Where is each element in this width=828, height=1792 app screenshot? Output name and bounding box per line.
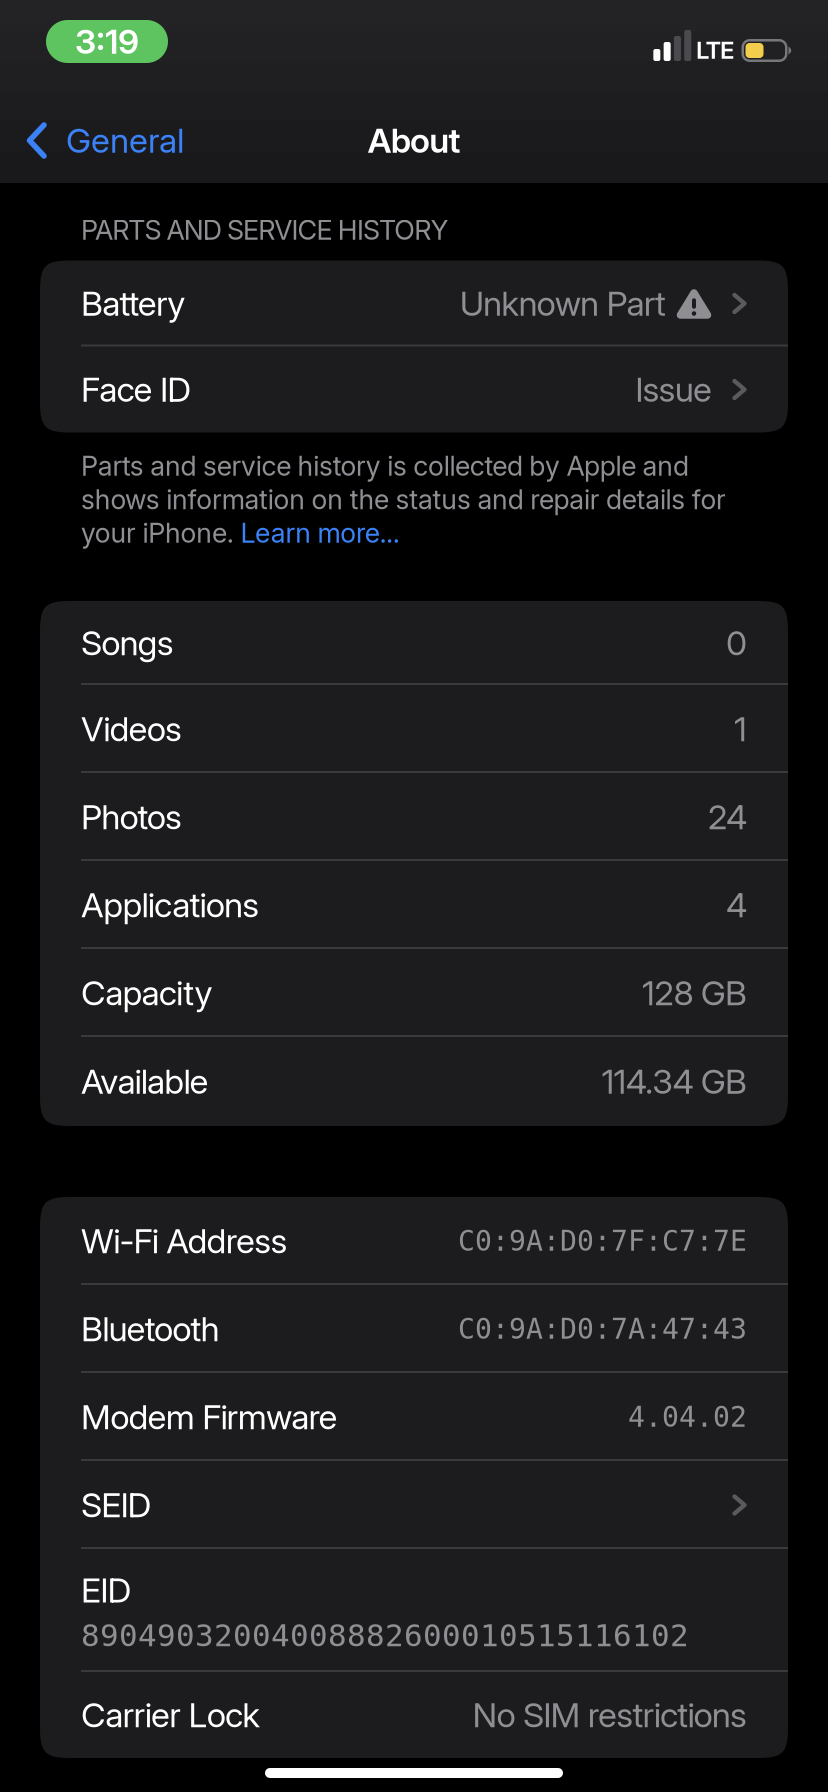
staticText: your iPhone.: [81, 517, 240, 549]
staticText: 4: [726, 884, 747, 925]
staticText: 3:19: [75, 21, 139, 62]
staticText: 128 GB: [642, 972, 747, 1013]
staticText: 114.34 GB: [601, 1061, 747, 1102]
staticText: Learn more...: [240, 517, 400, 549]
staticText: shows information on the status and repa…: [81, 483, 726, 516]
staticText: No SIM restrictions: [472, 1694, 747, 1735]
staticText: 89049032004008882600010515116102: [81, 1618, 689, 1654]
staticText: SEID: [81, 1484, 152, 1525]
staticText: Battery: [81, 283, 185, 324]
staticText: Applications: [81, 884, 259, 925]
staticText: Unknown Part: [460, 283, 666, 324]
staticText: Bluetooth: [81, 1308, 220, 1349]
button[interactable]: SEID: [40, 1461, 788, 1549]
staticText: EID: [81, 1569, 131, 1610]
staticText: Available: [81, 1061, 209, 1102]
staticText: Songs: [81, 622, 174, 663]
staticText: 1: [734, 708, 747, 749]
staticText: Photos: [81, 796, 182, 837]
button[interactable]: Face ID: [40, 346, 788, 432]
staticText: Modem Firmware: [81, 1396, 338, 1437]
staticText: LTE: [696, 35, 734, 64]
staticText: Face ID: [81, 369, 191, 410]
staticText: Videos: [81, 708, 182, 749]
staticText: 0: [726, 622, 747, 663]
button[interactable]: Return to call: [46, 20, 168, 63]
staticText: 4.04.02: [628, 1401, 747, 1433]
staticText: C0:9A:D0:7A:47:43: [458, 1313, 747, 1345]
staticText: Parts and service history is collected b…: [81, 450, 689, 482]
staticText: About: [368, 120, 460, 161]
button[interactable]: Battery: [40, 260, 788, 346]
staticText: Wi-Fi Address: [81, 1220, 287, 1261]
staticText: 24: [708, 796, 747, 837]
staticText: Carrier Lock: [81, 1694, 260, 1735]
staticText: Capacity: [81, 972, 212, 1013]
button[interactable]: Learn more...: [240, 517, 400, 549]
button[interactable]: Back to General: [26, 120, 184, 161]
staticText: C0:9A:D0:7F:C7:7E: [458, 1225, 747, 1257]
staticText: PARTS AND SERVICE HISTORY: [81, 214, 448, 246]
staticText: General: [66, 120, 184, 161]
staticText: Issue: [635, 369, 712, 410]
